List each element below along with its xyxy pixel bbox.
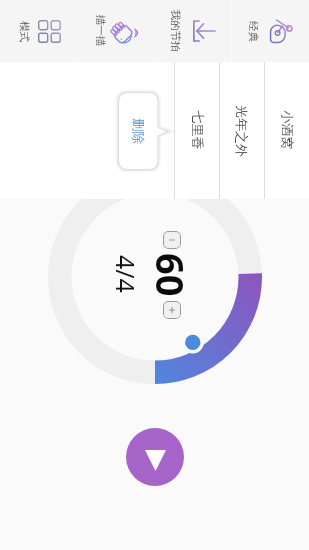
staticText: 4/4 (109, 255, 143, 293)
staticText: 描一描 (93, 14, 106, 46)
staticText: 我的节拍 (168, 9, 181, 51)
button[interactable]: 小酒窝 (264, 62, 309, 199)
button[interactable]: 模式 (0, 0, 77, 62)
staticText: 七里香 (189, 110, 205, 149)
staticText: 光年之外 (234, 105, 250, 157)
staticText: 经典 (247, 21, 260, 42)
button[interactable]: 描一描 (77, 0, 154, 62)
staticText: 60 (145, 253, 197, 297)
button[interactable]: Increase tempo (163, 301, 181, 319)
button[interactable]: Decrease tempo (163, 231, 181, 249)
button[interactable]: 经典 (231, 0, 308, 62)
button[interactable]: 七里香 (174, 62, 219, 199)
button[interactable]: Play (126, 428, 184, 486)
staticText: 删除 (131, 118, 147, 144)
button[interactable]: 我的节拍 (154, 0, 231, 62)
staticText: 小酒窝 (279, 110, 295, 149)
staticText: 模式 (18, 21, 31, 42)
button[interactable]: 光年之外 (219, 62, 264, 199)
